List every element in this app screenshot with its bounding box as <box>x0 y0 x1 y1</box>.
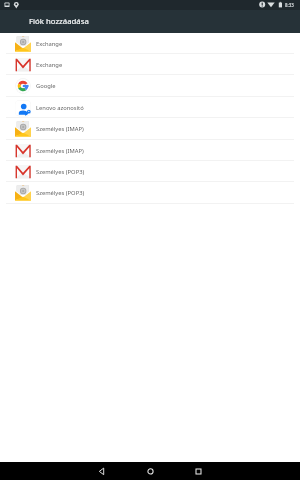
button[interactable]: Személyes (POP3) <box>0 182 300 204</box>
button[interactable]: Személyes (IMAP) <box>0 118 300 140</box>
button[interactable]: Lenovo azonosító <box>0 97 300 118</box>
staticText: Személyes (IMAP) <box>36 147 84 155</box>
button[interactable]: Exchange <box>0 33 300 54</box>
button[interactable]: Recent apps <box>189 462 207 480</box>
staticText: Személyes (POP3) <box>36 168 85 176</box>
button[interactable]: Személyes (IMAP) <box>0 140 300 161</box>
staticText: Lenovo azonosító <box>36 104 84 112</box>
button[interactable]: Személyes (POP3) <box>0 161 300 182</box>
staticText: Google <box>36 82 56 90</box>
button[interactable]: Google <box>0 75 300 97</box>
staticText: Fiók hozzáadása <box>29 16 89 27</box>
button[interactable]: Back <box>93 462 111 480</box>
staticText: Személyes (IMAP) <box>36 125 84 133</box>
staticText: Exchange <box>36 61 63 69</box>
button[interactable]: Home <box>141 462 159 480</box>
button[interactable]: Exchange <box>0 54 300 75</box>
staticText: Személyes (POP3) <box>36 189 85 197</box>
staticText: 8:33 <box>285 2 294 8</box>
staticText: Exchange <box>36 40 63 48</box>
